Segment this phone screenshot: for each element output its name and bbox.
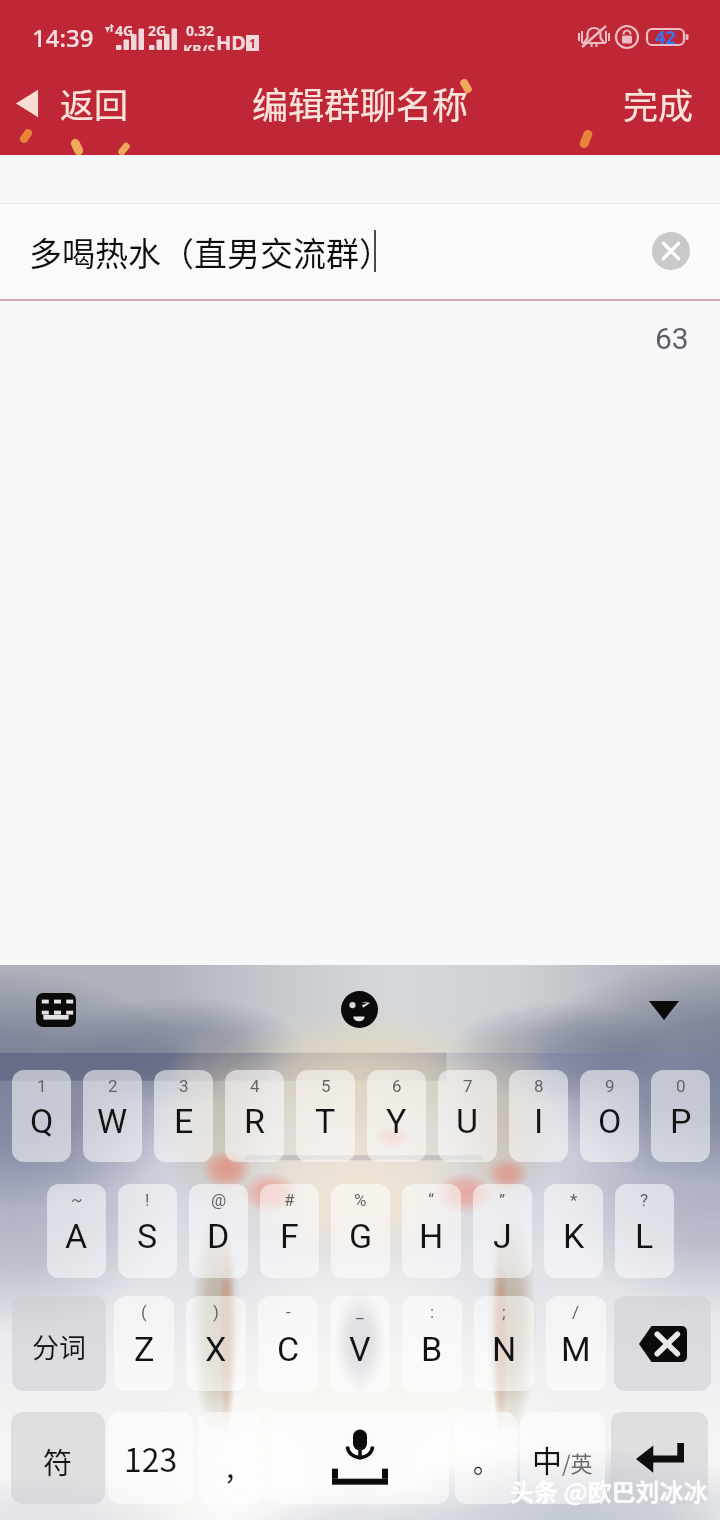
button[interactable]: ”	[473, 1184, 532, 1278]
button[interactable]: 完成	[593, 72, 720, 134]
button[interactable]: 。	[455, 1412, 517, 1504]
staticText: 42	[655, 25, 676, 50]
staticText: P	[670, 1101, 692, 1141]
staticText: 编辑群聊名称	[252, 77, 469, 129]
button[interactable]: ,	[198, 1412, 262, 1504]
button[interactable]: Backspace	[614, 1296, 711, 1391]
staticText: C	[277, 1329, 300, 1369]
button[interactable]: “	[402, 1184, 461, 1278]
button[interactable]: _	[330, 1296, 390, 1391]
staticText: 0	[676, 1076, 686, 1096]
button[interactable]: 0	[651, 1070, 710, 1162]
button[interactable]: 中	[520, 1412, 605, 1504]
button[interactable]: 返回	[0, 72, 146, 134]
staticText: ;	[502, 1302, 506, 1322]
staticText: Q	[30, 1101, 54, 1141]
button[interactable]: 123	[108, 1412, 193, 1504]
staticText: 7	[463, 1076, 473, 1096]
staticText: I	[534, 1101, 544, 1141]
button[interactable]: Hide keyboard	[649, 1001, 679, 1020]
staticText: 符	[43, 1440, 73, 1482]
staticText: 123	[124, 1435, 178, 1481]
staticText: L	[635, 1216, 654, 1256]
button[interactable]: 4	[225, 1070, 284, 1162]
staticText: ,	[226, 1443, 235, 1486]
button[interactable]: 符	[11, 1412, 105, 1504]
staticText: 63	[655, 321, 689, 356]
staticText: :	[430, 1302, 435, 1322]
staticText: R	[244, 1101, 265, 1141]
button[interactable]: *	[544, 1184, 603, 1278]
staticText: V	[349, 1329, 371, 1369]
button[interactable]: 2	[83, 1070, 142, 1162]
button[interactable]: :	[402, 1296, 462, 1391]
staticText: 3	[179, 1076, 189, 1096]
staticText: ?	[640, 1190, 649, 1210]
button[interactable]: 3	[154, 1070, 213, 1162]
staticText: /英	[562, 1446, 593, 1478]
staticText: ”	[499, 1190, 506, 1210]
button[interactable]: Enter	[611, 1412, 708, 1504]
button[interactable]: Emoji	[341, 991, 378, 1028]
staticText: U	[456, 1101, 479, 1141]
staticText: (	[141, 1302, 147, 1322]
staticText: 0.32	[186, 21, 214, 40]
staticText: “	[428, 1190, 435, 1210]
button[interactable]: %	[331, 1184, 390, 1278]
staticText: W	[97, 1101, 128, 1141]
button[interactable]: 6	[367, 1070, 426, 1162]
staticText: B	[421, 1329, 443, 1369]
staticText: J	[493, 1216, 512, 1256]
button[interactable]: !	[118, 1184, 177, 1278]
staticText: N	[492, 1329, 517, 1369]
button[interactable]: ?	[615, 1184, 674, 1278]
staticText: 分词	[32, 1327, 86, 1366]
button[interactable]: /	[546, 1296, 606, 1391]
button[interactable]: ;	[474, 1296, 534, 1391]
button[interactable]: Switch keyboard	[36, 993, 76, 1027]
button[interactable]: Clear text	[652, 232, 690, 270]
staticText: Z	[134, 1329, 155, 1369]
staticText: M	[561, 1329, 591, 1369]
button[interactable]: 7	[438, 1070, 497, 1162]
button[interactable]: 1	[12, 1070, 71, 1162]
button[interactable]: 分词	[12, 1296, 106, 1391]
button[interactable]: -	[258, 1296, 318, 1391]
button[interactable]: (	[114, 1296, 174, 1391]
staticText: 4	[250, 1076, 260, 1096]
staticText: %	[354, 1190, 367, 1210]
button[interactable]: Space	[271, 1412, 449, 1504]
button[interactable]: #	[260, 1184, 319, 1278]
button[interactable]: 5	[296, 1070, 355, 1162]
staticText: G	[349, 1216, 373, 1256]
button[interactable]: @	[189, 1184, 248, 1278]
staticText: 。	[473, 1443, 500, 1481]
staticText: H	[419, 1216, 444, 1256]
staticText: 8	[534, 1076, 544, 1096]
button[interactable]: )	[186, 1296, 246, 1391]
staticText: Y	[386, 1101, 407, 1141]
staticText: /	[572, 1302, 580, 1322]
staticText: K	[563, 1216, 585, 1256]
staticText: 6	[392, 1076, 402, 1096]
staticText: 完成	[623, 78, 694, 129]
staticText: 14:39	[32, 21, 94, 54]
button[interactable]: 9	[580, 1070, 639, 1162]
staticText: !	[145, 1190, 150, 1210]
button[interactable]: ~	[47, 1184, 106, 1278]
staticText: 头条 @欧巴刘冰冰	[510, 1473, 708, 1508]
staticText: 1	[249, 35, 256, 51]
staticText: 2G	[148, 21, 167, 40]
staticText: A	[65, 1216, 88, 1256]
staticText: 1	[37, 1076, 47, 1096]
staticText: HD	[216, 29, 246, 56]
staticText: -	[286, 1302, 291, 1322]
staticText: 返回	[60, 79, 128, 128]
staticText: S	[137, 1216, 158, 1256]
staticText: #	[284, 1190, 295, 1210]
button[interactable]: 8	[509, 1070, 568, 1162]
staticText: *	[570, 1190, 578, 1210]
staticText: E	[174, 1101, 194, 1141]
staticText: ~	[71, 1190, 83, 1210]
staticText: 中	[532, 1437, 562, 1480]
